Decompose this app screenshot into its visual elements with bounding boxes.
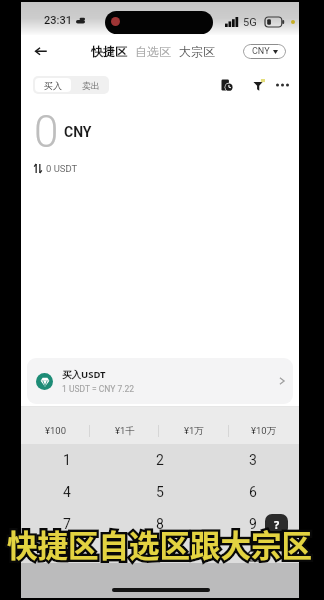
- button[interactable]: 9: [206, 508, 299, 540]
- staticText: ¥10万: [251, 425, 277, 437]
- button[interactable]: 5: [113, 476, 206, 508]
- staticText: 大宗区: [179, 44, 215, 59]
- staticText: CNY: [252, 46, 270, 57]
- staticText: ¥1万: [184, 425, 204, 437]
- staticText: 4: [63, 484, 71, 500]
- staticText: 9: [249, 516, 257, 532]
- staticText: ¥100: [45, 425, 67, 436]
- staticText: 卖出: [82, 80, 100, 91]
- button[interactable]: 8: [113, 508, 206, 540]
- button[interactable]: Filter: [250, 76, 268, 94]
- staticText: ?: [274, 517, 280, 532]
- button[interactable]: Help: [265, 514, 288, 535]
- staticText: 买入: [44, 80, 62, 91]
- button[interactable]: 1: [21, 444, 113, 476]
- button[interactable]: Order history: [218, 76, 236, 94]
- staticText: ¥1千: [115, 425, 135, 437]
- staticText: 2: [156, 452, 164, 468]
- staticText: 快捷区自选区跟大宗区: [7, 522, 312, 566]
- staticText: 8: [156, 516, 164, 532]
- staticText: 1: [63, 452, 71, 468]
- button[interactable]: Back: [29, 39, 53, 63]
- button[interactable]: 快捷区: [91, 44, 127, 59]
- button[interactable]: 4: [21, 476, 113, 508]
- staticText: 快捷区: [91, 44, 127, 59]
- button[interactable]: 6: [206, 476, 299, 508]
- staticText: 自选区: [135, 44, 171, 59]
- button[interactable]: ¥10万: [229, 407, 299, 448]
- button[interactable]: 大宗区: [179, 44, 215, 59]
- staticText: 5: [156, 484, 164, 500]
- staticText: 0: [34, 106, 59, 158]
- button[interactable]: ¥1千: [90, 407, 159, 448]
- staticText: .: [65, 548, 69, 564]
- button[interactable]: .: [21, 540, 113, 572]
- button[interactable]: 自选区: [135, 44, 171, 59]
- button[interactable]: 卖出: [73, 76, 109, 94]
- staticText: 6: [249, 484, 257, 500]
- staticText: CNY: [64, 124, 92, 140]
- staticText: 0 USDT: [46, 163, 78, 174]
- staticText: 0: [156, 548, 164, 564]
- button[interactable]: 3: [206, 444, 299, 476]
- staticText: 5G: [243, 16, 257, 29]
- button[interactable]: More options: [273, 76, 291, 94]
- button[interactable]: CNY: [243, 44, 286, 59]
- staticText: 3: [249, 452, 257, 468]
- button[interactable]: ¥100: [21, 407, 90, 448]
- staticText: 23:31: [44, 14, 72, 27]
- button[interactable]: 7: [21, 508, 113, 540]
- button[interactable]: ¥1万: [159, 407, 229, 448]
- staticText: 1 USDT = CNY 7.22: [62, 384, 134, 394]
- staticText: 快捷区自选区跟大宗区: [7, 522, 312, 566]
- staticText: 买入USDT: [62, 368, 106, 381]
- button[interactable]: 买入USDT: [27, 358, 293, 404]
- button[interactable]: 买入: [35, 78, 71, 92]
- button[interactable]: 0: [113, 540, 206, 572]
- button[interactable]: Backspace: [206, 540, 299, 572]
- button[interactable]: 2: [113, 444, 206, 476]
- staticText: 7: [63, 516, 71, 532]
